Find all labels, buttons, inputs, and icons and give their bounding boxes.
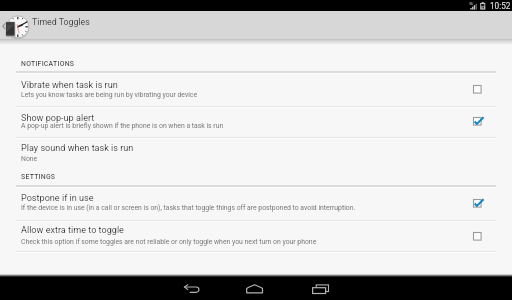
staticText: Show pop-up alert (21, 113, 95, 124)
staticText: None (21, 155, 38, 163)
button[interactable] (0, 186, 512, 220)
staticText: 10:52 (490, 1, 511, 11)
staticText: A pop-up alert is briefly shown if the p… (21, 122, 224, 130)
button[interactable]: Back (168, 276, 216, 300)
button[interactable]: Checked (456, 186, 496, 220)
staticText: Timed Toggles (32, 17, 90, 27)
button[interactable]: Recent apps (296, 276, 344, 300)
button[interactable]: Unchecked (456, 220, 496, 252)
button[interactable] (0, 137, 512, 170)
staticText: NOTIFICATIONS (21, 60, 75, 68)
staticText: If the device is in use (in a call or sc… (21, 204, 356, 212)
button[interactable] (0, 72, 512, 106)
staticText: Postpone if in use (21, 193, 94, 204)
button[interactable] (0, 220, 512, 252)
button[interactable]: Unchecked (456, 72, 496, 106)
staticText: Play sound when task is run (21, 143, 134, 154)
button[interactable]: Home (232, 276, 280, 300)
staticText: Vibrate when task is run (21, 80, 118, 91)
button[interactable] (0, 106, 512, 138)
staticText: Check this option if some toggles are no… (21, 238, 317, 246)
button[interactable]: Checked (456, 106, 496, 138)
button[interactable]: Navigate up (0, 11, 512, 40)
staticText: SETTINGS (21, 173, 56, 181)
staticText: Lets you know tasks are being run by vib… (21, 91, 198, 99)
staticText: Allow extra time to toggle (21, 225, 124, 236)
